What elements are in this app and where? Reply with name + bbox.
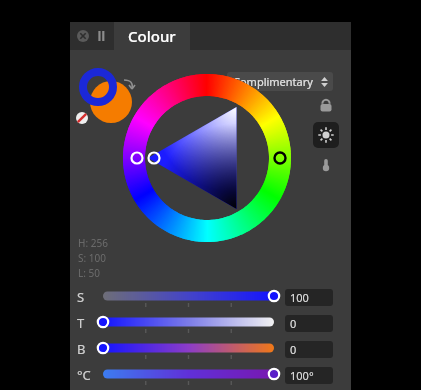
button[interactable] <box>76 74 138 126</box>
staticText: B <box>77 340 86 358</box>
button[interactable]: Complimentary <box>227 72 333 91</box>
staticText: 100° <box>290 368 314 383</box>
staticText: L: 50 <box>78 266 100 280</box>
staticText: °C <box>77 366 91 384</box>
button[interactable]: Temperature <box>313 152 339 178</box>
button[interactable]: 100 <box>285 289 333 306</box>
staticText: 100 <box>290 290 309 305</box>
staticText: S: 100 <box>78 251 106 265</box>
button[interactable]: 0 <box>285 315 333 332</box>
button[interactable]: Lock <box>313 92 339 118</box>
button[interactable] <box>96 288 281 306</box>
button[interactable]: Pause <box>95 30 107 42</box>
button[interactable]: Colour <box>114 22 190 50</box>
staticText: 0 <box>290 316 297 331</box>
staticText: S <box>77 288 85 306</box>
staticText: H: 256 <box>78 236 108 250</box>
button[interactable] <box>96 314 281 332</box>
button[interactable]: 0 <box>285 341 333 358</box>
button[interactable]: Brightness <box>313 122 339 148</box>
button[interactable] <box>96 366 281 384</box>
button[interactable]: Close <box>76 29 90 43</box>
staticText: Complimentary <box>233 74 313 89</box>
button[interactable]: 100° <box>285 367 333 384</box>
staticText: 0 <box>290 342 297 357</box>
staticText: T <box>77 314 85 332</box>
staticText: Colour <box>128 26 176 46</box>
button[interactable] <box>96 340 281 358</box>
button[interactable] <box>121 72 293 244</box>
